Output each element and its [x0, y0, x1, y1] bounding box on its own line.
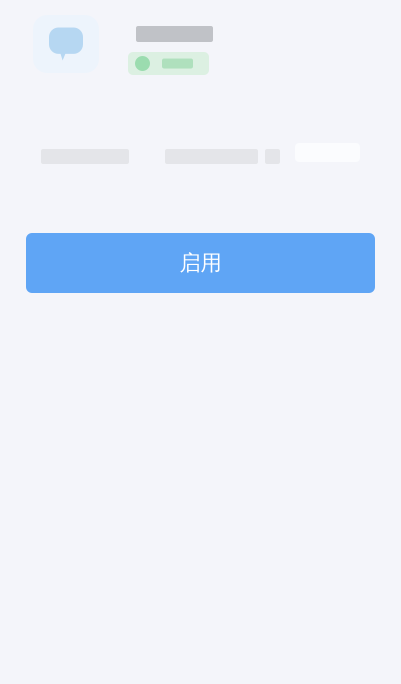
staticText: 启用 [179, 250, 221, 276]
button[interactable]: 启用 [26, 233, 375, 293]
